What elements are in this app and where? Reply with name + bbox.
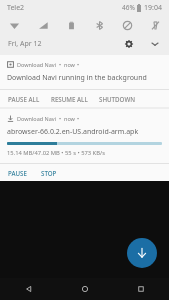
staticText: • <box>77 115 80 122</box>
button[interactable]: Flashlight <box>141 15 169 35</box>
staticText: now <box>64 115 75 122</box>
staticText: Download Navi running in the background <box>7 73 147 83</box>
staticText: now <box>64 61 75 68</box>
button[interactable]: Add download <box>127 238 157 268</box>
staticText: Download Navi <box>17 115 57 122</box>
button[interactable]: Recent apps <box>113 278 169 300</box>
button[interactable]: Settings <box>121 36 137 52</box>
button[interactable]: PAUSE ALL <box>7 93 41 105</box>
staticText: PAUSE ALL <box>8 95 40 103</box>
staticText: Download Navi <box>17 61 57 68</box>
staticText: abrowser-66.0.2.en-US.android-arm.apk <box>7 127 139 137</box>
button[interactable]: STOP <box>40 167 58 179</box>
staticText: 15.14 MB/47.02 MB • 55 s • 573 KB/s <box>7 149 105 157</box>
button[interactable]: Battery saver <box>57 15 85 35</box>
button[interactable]: Mobile data <box>29 15 57 35</box>
button[interactable]: Back <box>0 278 57 300</box>
staticText: 19:04 <box>144 3 162 13</box>
button[interactable]: Expand <box>147 36 163 52</box>
staticText: • <box>59 115 62 122</box>
staticText: Fri, Apr 12 <box>8 39 42 49</box>
staticText: RESUME ALL <box>51 95 88 103</box>
staticText: • <box>77 61 80 68</box>
button[interactable]: Wi-Fi <box>0 15 29 35</box>
button[interactable]: Bluetooth <box>85 15 113 35</box>
button[interactable]: Home <box>57 278 113 300</box>
button[interactable]: SHUTDOWN <box>98 93 137 105</box>
staticText: • <box>59 61 62 68</box>
staticText: SHUTDOWN <box>99 95 136 103</box>
staticText: STOP <box>41 169 57 177</box>
button[interactable]: Do not disturb <box>113 15 141 35</box>
button[interactable]: RESUME ALL <box>50 93 89 105</box>
button[interactable]: PAUSE <box>7 167 28 179</box>
staticText: 46% <box>122 3 135 12</box>
staticText: PAUSE <box>8 169 27 177</box>
staticText: Tele2 <box>7 3 25 13</box>
